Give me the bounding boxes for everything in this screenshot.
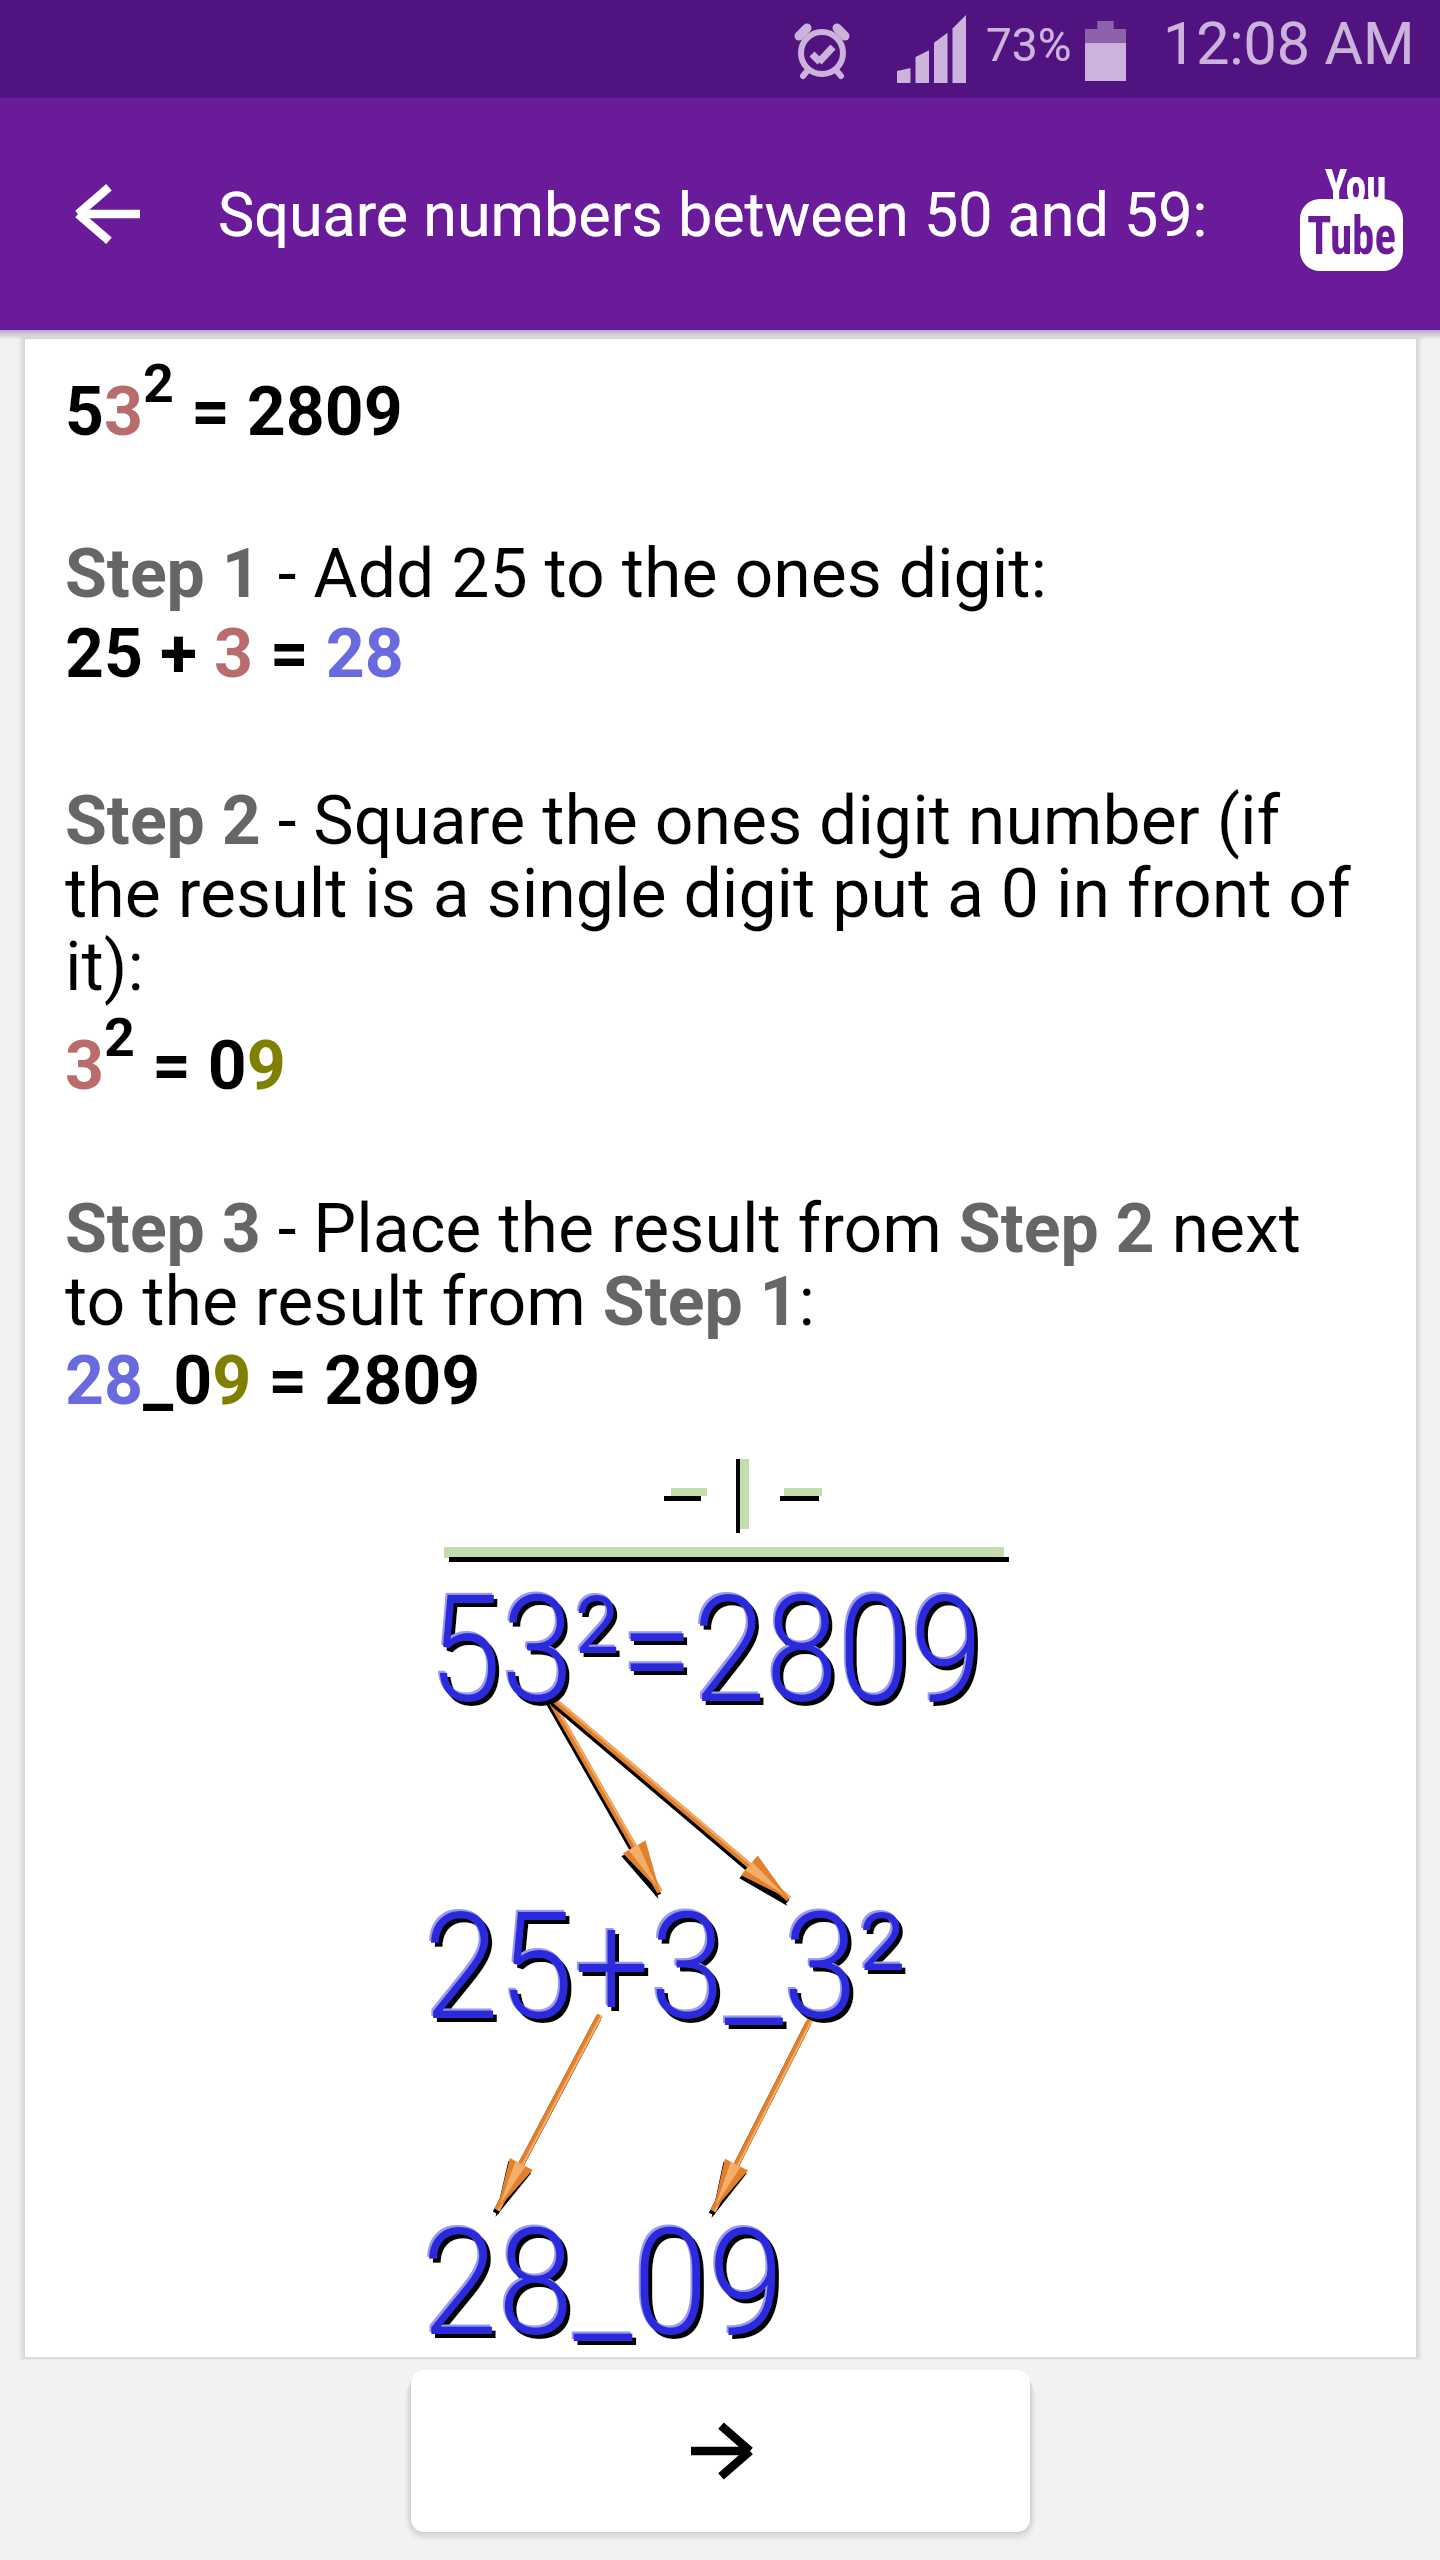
staticText: Step 1 - Add 25 to the ones digit: xyxy=(65,534,1048,614)
staticText: 28_09 xyxy=(426,2201,788,2374)
staticText: 25 + 3 = 28 xyxy=(65,614,404,694)
staticText: 53²=2809 xyxy=(429,1564,983,1737)
staticText: 28_09 xyxy=(420,2195,783,2368)
staticText: Step 2 - Square the ones digit number (i… xyxy=(65,781,1372,1006)
staticText: 32 = 09 xyxy=(65,1006,286,1106)
staticText: Square numbers between 50 and 59: xyxy=(218,179,1208,250)
staticText: 28_09 xyxy=(422,2197,785,2370)
staticText: 25+3_3² xyxy=(424,1881,907,2054)
staticText: 28_09 = 2809 xyxy=(65,1341,481,1421)
staticText: Tube xyxy=(1307,203,1396,267)
staticText: 53²=2809 xyxy=(427,1562,981,1735)
staticText: Step 3 - Place the result from Step 2 ne… xyxy=(65,1189,1372,1341)
staticText: 532 = 2809 xyxy=(65,352,403,452)
staticText: 73% xyxy=(986,18,1072,72)
staticText: 53²=2809 xyxy=(432,1568,986,1741)
button[interactable]: YouTube xyxy=(1263,98,1440,330)
button[interactable]: Next xyxy=(411,2370,1030,2532)
staticText: You xyxy=(1325,158,1387,214)
button[interactable]: Back xyxy=(0,98,218,330)
staticText: 12:08 AM xyxy=(1163,9,1415,78)
staticText: 25+3_3² xyxy=(428,1885,911,2058)
staticText: 25+3_3² xyxy=(422,1879,906,2052)
